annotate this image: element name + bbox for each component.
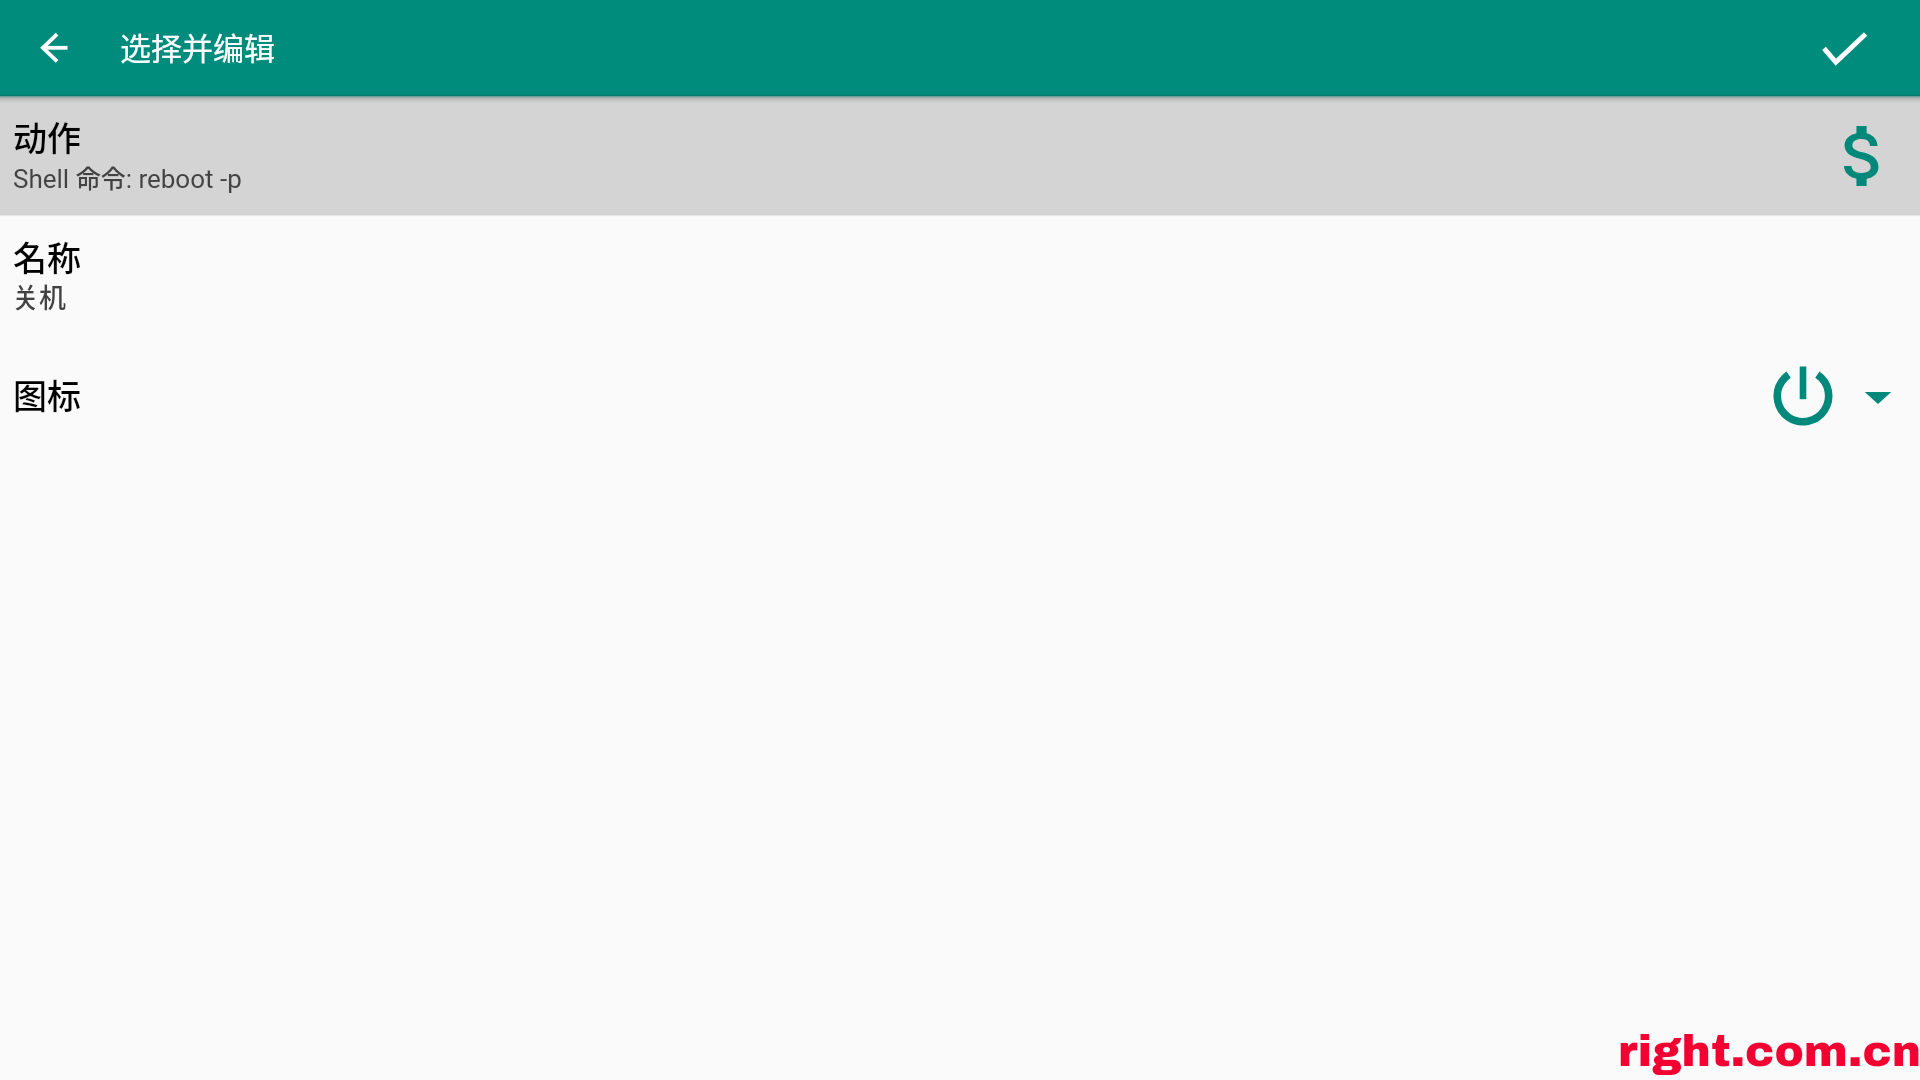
staticText: 图标 [13, 370, 81, 419]
staticText: 动作 [13, 112, 81, 161]
button[interactable]: 名称 [0, 222, 1920, 326]
staticText: Shell 命令: reboot -p [13, 159, 242, 195]
staticText: 关机 [12, 277, 66, 316]
staticText: 名称 [13, 232, 81, 281]
staticText: right.com.cn [1618, 1027, 1920, 1075]
button[interactable]: 图标 [0, 360, 1920, 440]
staticText: 选择并编辑 [120, 24, 275, 69]
button[interactable]: Confirm [1796, 0, 1892, 96]
button[interactable]: Back [7, 0, 103, 96]
button[interactable]: Choose icon: power [1762, 360, 1914, 440]
button[interactable]: 动作 [0, 96, 1920, 215]
